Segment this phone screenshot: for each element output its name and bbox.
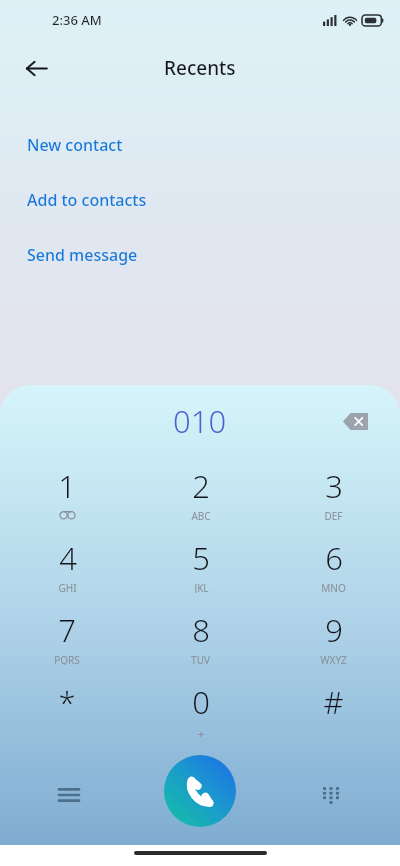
staticText: 8 xyxy=(192,609,210,651)
staticText: Send message xyxy=(27,244,138,266)
staticText: 7 xyxy=(58,609,76,651)
staticText: GHI xyxy=(58,581,77,593)
button[interactable]: 5 xyxy=(134,529,267,601)
staticText: 1 xyxy=(58,465,76,507)
button[interactable]: Call xyxy=(164,755,236,827)
button[interactable]: 2 xyxy=(134,457,267,529)
button[interactable]: 9 xyxy=(267,601,400,673)
button[interactable]: Hide keypad xyxy=(309,773,353,817)
staticText: MNO xyxy=(321,581,346,593)
button[interactable]: # xyxy=(267,673,400,745)
button[interactable]: 6 xyxy=(267,529,400,601)
staticText: # xyxy=(323,681,344,723)
staticText: 9 xyxy=(325,609,343,651)
staticText: * xyxy=(58,681,76,723)
staticText: 2:36 AM xyxy=(52,11,102,29)
staticText: Add to contacts xyxy=(27,189,147,211)
staticText: Recents xyxy=(164,55,236,81)
staticText: + xyxy=(197,725,205,737)
staticText: PQRS xyxy=(54,653,80,665)
staticText: New contact xyxy=(27,134,123,156)
button[interactable]: New contact xyxy=(0,117,400,172)
button[interactable]: 0 xyxy=(134,673,267,745)
staticText: DEF xyxy=(324,509,343,521)
staticText: 2 xyxy=(192,465,210,507)
staticText: ABC xyxy=(191,509,211,521)
button[interactable]: 1 xyxy=(0,457,134,529)
button[interactable]: Add to contacts xyxy=(0,172,400,227)
staticText: TUV xyxy=(191,653,210,665)
button[interactable]: Delete xyxy=(334,400,376,442)
button[interactable]: Back xyxy=(14,46,58,90)
button[interactable]: 4 xyxy=(0,529,134,601)
button[interactable]: More options xyxy=(47,773,91,817)
button[interactable]: Send message xyxy=(0,227,400,282)
button[interactable]: 3 xyxy=(267,457,400,529)
staticText: 0 xyxy=(192,681,210,723)
staticText: 3 xyxy=(325,465,343,507)
staticText: 5 xyxy=(192,537,210,579)
staticText: 4 xyxy=(59,537,77,579)
staticText: JKL xyxy=(194,581,209,593)
button[interactable]: 7 xyxy=(0,601,134,673)
staticText: 010 xyxy=(173,400,227,442)
staticText: 6 xyxy=(325,537,343,579)
button[interactable]: 8 xyxy=(134,601,267,673)
button[interactable]: * xyxy=(0,673,134,745)
staticText: WXYZ xyxy=(320,653,347,665)
